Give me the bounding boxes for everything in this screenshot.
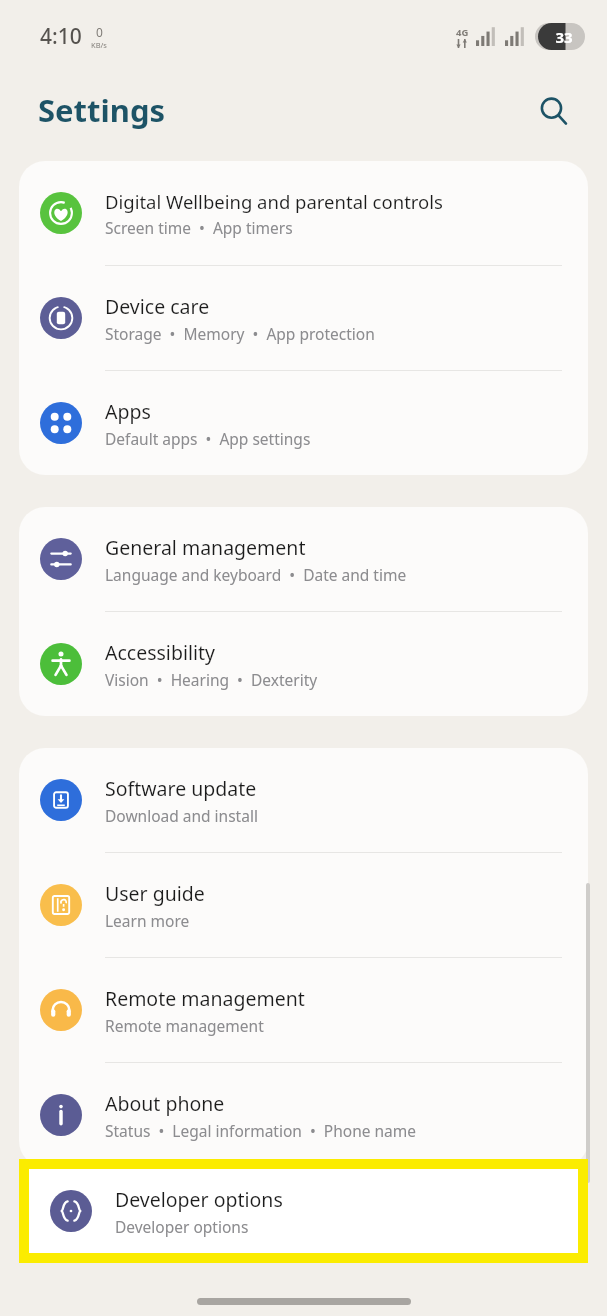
staticText: Apps	[105, 398, 151, 425]
staticText: Status • Legal information • Phone name	[105, 1120, 417, 1141]
staticText: Remote management	[105, 985, 305, 1012]
staticText: About phone	[105, 1090, 225, 1117]
button[interactable]: Digital Wellbeing and parental controls	[19, 161, 588, 266]
button[interactable]: Search	[529, 86, 577, 134]
staticText: Accessibility	[105, 639, 215, 666]
staticText: Settings	[38, 89, 166, 131]
staticText: 4:10	[40, 22, 82, 51]
staticText: User guide	[105, 880, 205, 907]
button[interactable]: About phone	[19, 1063, 588, 1167]
staticText: KB/s	[91, 40, 107, 50]
staticText: Learn more	[105, 910, 190, 931]
staticText: 4G	[456, 26, 469, 39]
staticText: Digital Wellbeing and parental controls	[105, 189, 443, 214]
staticText: Default apps • App settings	[105, 428, 311, 449]
staticText: Vision • Hearing • Dexterity	[105, 669, 318, 690]
button[interactable]: Apps	[19, 371, 588, 475]
staticText: Developer options	[115, 1216, 249, 1237]
button[interactable]: Software update	[19, 748, 588, 853]
staticText: Language and keyboard • Date and time	[105, 564, 407, 585]
button[interactable]: Remote management	[19, 958, 588, 1063]
staticText: Storage • Memory • App protection	[105, 323, 375, 344]
staticText: Screen time • App timers	[105, 217, 293, 238]
button[interactable]: User guide	[19, 853, 588, 958]
staticText: General management	[105, 534, 306, 561]
staticText: Software update	[105, 775, 257, 802]
button[interactable]: Device care	[19, 266, 588, 371]
staticText: 0	[96, 24, 103, 40]
staticText: 33	[555, 27, 573, 47]
button[interactable]: Accessibility	[19, 612, 588, 716]
staticText: Device care	[105, 293, 210, 320]
button[interactable]: Developer options	[29, 1169, 578, 1253]
staticText: Developer options	[115, 1186, 283, 1213]
button[interactable]: General management	[19, 507, 588, 612]
staticText: Remote management	[105, 1015, 264, 1036]
staticText: Download and install	[105, 805, 258, 826]
